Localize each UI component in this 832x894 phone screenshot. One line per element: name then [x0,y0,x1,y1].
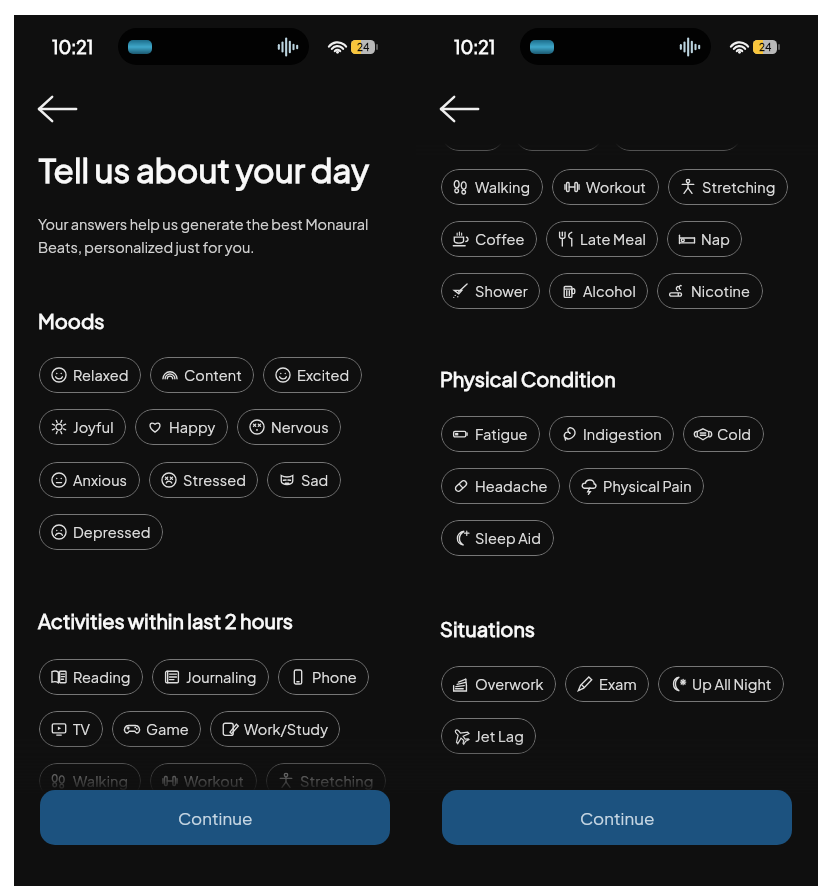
button[interactable]: Cold [683,416,764,452]
button[interactable]: Workout [552,169,659,205]
button[interactable]: Happy [135,409,228,445]
button[interactable]: Late Meal [546,221,658,257]
staticText: 24 [357,41,370,54]
staticText: Relaxed [73,366,129,384]
staticText: Joyful [73,418,114,436]
staticText: TV [73,720,91,738]
staticText: Workout [184,772,245,790]
button[interactable]: Sad [267,462,341,498]
button[interactable]: Nervous [237,409,341,445]
button[interactable]: Exam [565,666,649,702]
button[interactable]: Excited [263,357,362,393]
staticText: Depressed [73,523,151,541]
staticText: Work/Study [244,720,328,738]
button[interactable]: Physical Pain [569,468,704,504]
button[interactable]: Walking [39,763,141,799]
button[interactable]: TV [39,711,103,747]
staticText: Indigestion [583,425,662,443]
staticText: Shower [475,282,528,300]
button[interactable]: Nicotine [657,273,763,309]
staticText: Physical Condition [440,366,616,391]
staticText: Stretching [300,772,374,790]
staticText: Anxious [73,471,128,489]
staticText: Reading [73,668,131,686]
staticText: Physical Pain [603,477,692,495]
button[interactable]: Back [439,92,479,126]
button[interactable]: TV [441,115,505,151]
button[interactable]: Fatigue [441,416,540,452]
staticText: Fatigue [475,425,528,443]
staticText: Sleep Aid [475,529,542,547]
staticText: Phone [312,668,357,686]
staticText: Walking [475,178,531,196]
staticText: Content [184,366,242,384]
button[interactable]: Sleep Aid [441,520,554,556]
staticText: Headache [475,477,548,495]
button[interactable]: Back [37,92,77,126]
button[interactable]: Shower [441,273,540,309]
staticText: Happy [169,418,216,436]
staticText: Activities within last 2 hours [38,608,294,633]
button[interactable]: Relaxed [39,357,141,393]
button[interactable]: Stretching [266,763,386,799]
staticText: Overwork [475,675,544,693]
staticText: Game [146,720,189,738]
button[interactable]: Overwork [441,666,556,702]
staticText: Late Meal [580,230,646,248]
staticText: Stressed [183,471,246,489]
staticText: Exam [599,675,637,693]
staticText: 24 [759,41,772,54]
button[interactable]: Indigestion [549,416,674,452]
staticText: Cold [717,425,752,443]
button[interactable]: Stretching [668,169,788,205]
staticText: Situations [440,616,536,641]
button[interactable]: Game [514,115,603,151]
button[interactable]: Walking [441,169,543,205]
staticText: Up All Night [692,675,772,693]
button[interactable]: Continue [40,790,390,845]
button[interactable]: Headache [441,468,560,504]
staticText: Coffee [475,230,525,248]
staticText: Excited [297,366,350,384]
button[interactable]: Anxious [39,462,140,498]
staticText: 10:21 [454,36,496,58]
button[interactable]: Continue [442,790,792,845]
button[interactable]: Coffee [441,221,537,257]
button[interactable]: Stressed [149,462,258,498]
staticText: Workout [586,178,647,196]
button[interactable]: Work/Study [612,115,742,151]
staticText: Nervous [271,418,329,436]
button[interactable]: Work/Study [210,711,340,747]
button[interactable]: Jet Lag [441,718,536,754]
staticText: Your answers help us generate the best M… [38,215,369,256]
button[interactable]: Phone [278,659,369,695]
staticText: Continue [580,807,655,828]
button[interactable]: Reading [39,659,143,695]
staticText: Jet Lag [475,727,524,745]
button[interactable]: Alcohol [549,273,648,309]
button[interactable]: Workout [150,763,257,799]
staticText: Nap [701,230,730,248]
staticText: Stretching [702,178,776,196]
staticText: Sad [301,471,329,489]
button[interactable]: Depressed [39,514,163,550]
staticText: Moods [38,308,105,333]
button[interactable]: Game [112,711,201,747]
staticText: Tell us about your day [39,149,369,191]
button[interactable]: Journaling [152,659,269,695]
staticText: Continue [178,807,253,828]
button[interactable]: Nap [667,221,742,257]
staticText: Nicotine [691,282,751,300]
button[interactable]: Content [150,357,254,393]
staticText: Journaling [186,668,257,686]
staticText: Walking [73,772,129,790]
button[interactable]: Up All Night [658,666,784,702]
staticText: 10:21 [52,36,94,58]
button[interactable]: Joyful [39,409,126,445]
staticText: Alcohol [583,282,636,300]
